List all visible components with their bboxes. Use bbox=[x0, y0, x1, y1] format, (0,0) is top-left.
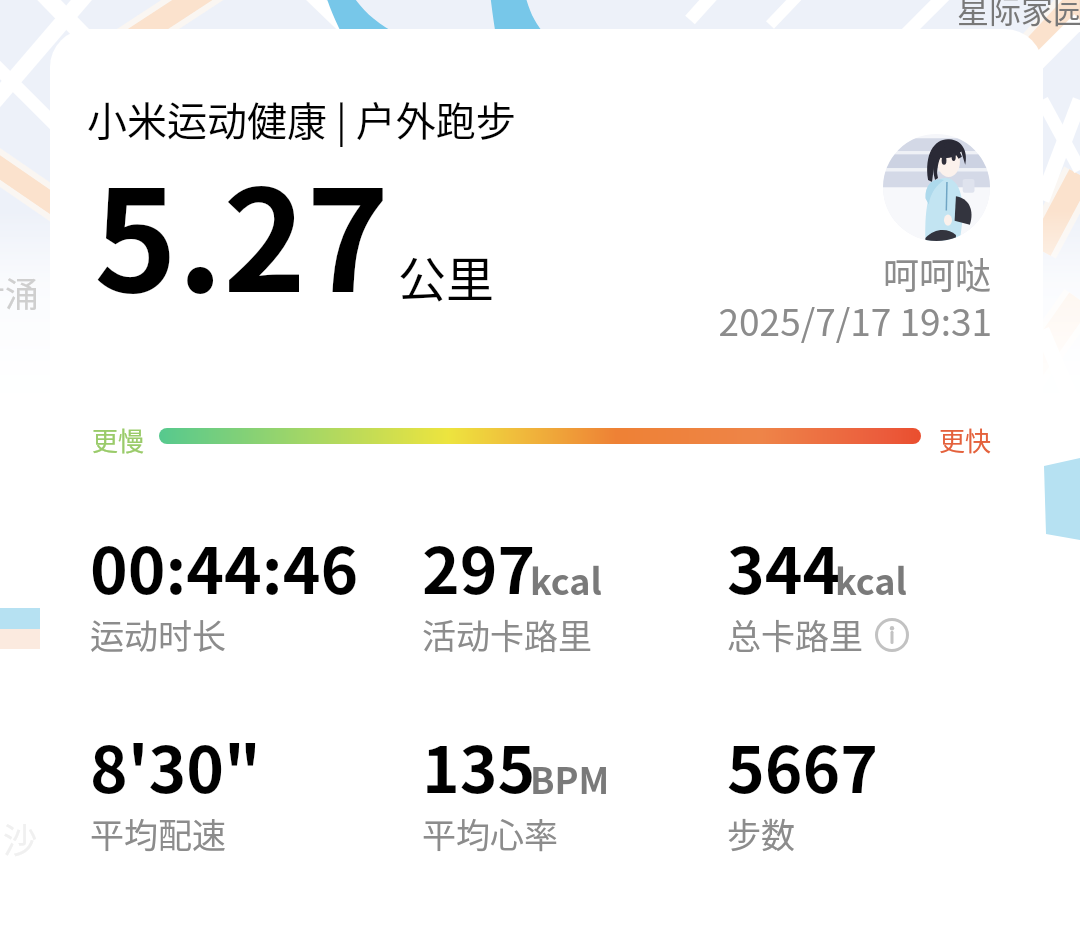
staticText: 更慢 bbox=[92, 421, 145, 459]
staticText: 小米运动健康 | 户外跑步 bbox=[87, 90, 516, 148]
button[interactable]: 8'30" bbox=[90, 719, 261, 812]
staticText: 步涌 bbox=[0, 268, 39, 317]
staticText: 5667 bbox=[727, 719, 879, 812]
staticText: 297 bbox=[422, 520, 536, 613]
staticText: 平均心率 bbox=[422, 809, 558, 858]
button[interactable]: Total calories info bbox=[875, 618, 909, 652]
staticText: 更快 bbox=[939, 421, 992, 459]
staticText: kcal bbox=[530, 553, 602, 605]
staticText: 公里 bbox=[398, 241, 495, 311]
staticText: 2025/7/17 19:31 bbox=[620, 293, 992, 347]
button[interactable]: 5667 bbox=[727, 719, 879, 812]
staticText: 步数 bbox=[727, 809, 795, 858]
button[interactable]: 00:44:46 bbox=[90, 520, 359, 613]
staticText: 5.27 bbox=[94, 128, 390, 332]
button[interactable]: 135 bbox=[422, 719, 616, 812]
staticText: 呵呵哒 bbox=[700, 247, 991, 299]
staticText: 运动时长 bbox=[90, 610, 226, 659]
button[interactable]: 297 bbox=[422, 520, 608, 613]
staticText: 活动卡路里 bbox=[422, 610, 592, 659]
button[interactable]: User avatar bbox=[883, 134, 990, 241]
staticText: 平均配速 bbox=[90, 809, 226, 858]
staticText: 8'30" bbox=[90, 719, 261, 812]
button[interactable]: 344 bbox=[727, 520, 913, 613]
staticText: 344 bbox=[727, 520, 841, 613]
staticText: 沙 bbox=[3, 814, 37, 863]
staticText: 135 bbox=[422, 719, 536, 812]
staticText: 星际家园 bbox=[957, 0, 1080, 32]
staticText: BPM bbox=[530, 752, 610, 804]
staticText: 总卡路里 bbox=[727, 610, 863, 659]
staticText: 00:44:46 bbox=[90, 520, 359, 613]
staticText: kcal bbox=[835, 553, 907, 605]
